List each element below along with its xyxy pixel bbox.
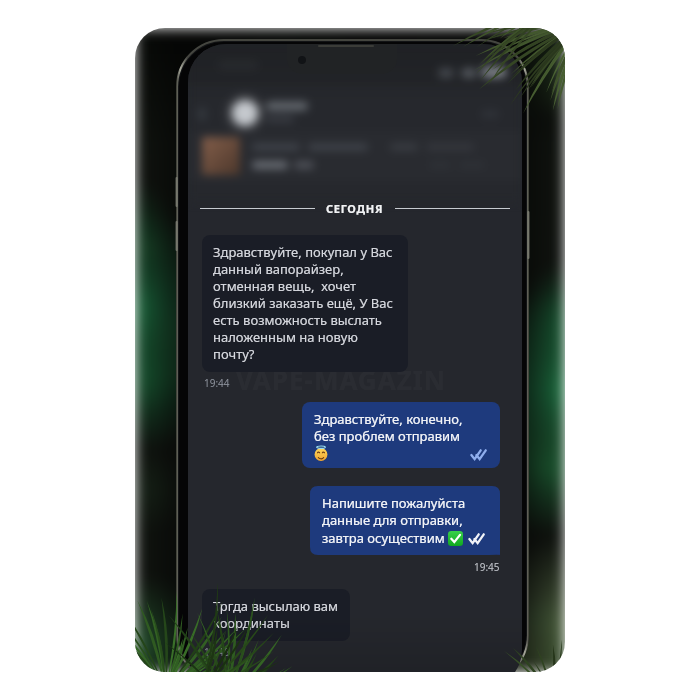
- staticText: СЕГОДНЯ: [326, 201, 384, 216]
- staticText: VAPE-MAGAZIN: [236, 362, 446, 397]
- staticText: Здравствуйте, конечно, без проблем отпра…: [314, 410, 463, 445]
- staticText: Тргда высылаю вам координаты: [213, 597, 340, 632]
- staticText: Здравствуйте, покупал у Вас данный вапор…: [213, 243, 398, 363]
- staticText: 19:45: [204, 645, 230, 659]
- staticText: Напишите пожалуйста данные для отправки,: [322, 494, 466, 529]
- staticText: 19:44: [204, 376, 230, 390]
- staticText: 19:45: [474, 560, 500, 574]
- button[interactable]: Здравствуйте, покупал у Вас данный вапор…: [202, 235, 408, 372]
- button[interactable]: Тргда высылаю вам координаты: [202, 589, 350, 641]
- button[interactable]: Здравствуйте, конечно, без проблем отпра…: [302, 402, 500, 468]
- button[interactable]: Напишите пожалуйста данные для отправки,: [310, 486, 500, 555]
- staticText: завтра осуществим: [322, 529, 445, 547]
